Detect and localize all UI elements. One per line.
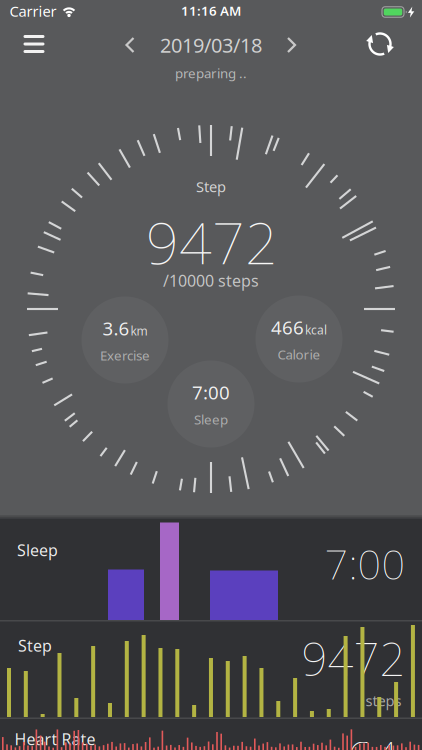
staticText: 7:00 [192,380,230,405]
staticText: Calorie [277,345,320,363]
staticText: Exercise [100,346,150,364]
staticText: kcal [305,322,327,338]
button[interactable]: 466 [255,295,342,382]
button[interactable]: 3.6 [81,296,168,383]
staticText: 64 [346,727,398,750]
staticText: steps [365,691,401,710]
button[interactable] [12,22,56,66]
staticText: Step [18,635,52,656]
staticText: 2019/03/18 [160,32,262,58]
staticText: Carrier [9,1,56,21]
staticText: 7:00 [324,536,405,591]
staticText: km [130,323,147,339]
staticText: Sleep [194,410,228,428]
staticText: Heart Rate [14,728,95,750]
staticText: /10000 steps [163,270,259,291]
button[interactable]: Sleep [0,518,422,621]
button[interactable]: Heart Rate [0,719,422,750]
button[interactable] [119,30,140,60]
button[interactable]: 7:00 [167,360,254,447]
staticText: preparing .. [175,64,247,82]
staticText: 11:16 AM [181,2,241,19]
staticText: 9472 [301,628,405,689]
staticText: Step [196,177,226,196]
staticText: 9472 [146,204,278,280]
button[interactable] [358,22,402,66]
staticText: 466 [271,315,304,340]
button[interactable]: Step [0,621,422,718]
staticText: 3.6 [102,316,129,341]
staticText: Sleep [17,539,58,561]
button[interactable] [281,30,302,60]
